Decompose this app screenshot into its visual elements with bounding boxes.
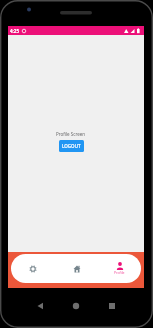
staticText: Profile Screen — [56, 131, 86, 137]
staticText: 4:25 — [10, 28, 19, 34]
staticText: Profile — [114, 270, 125, 275]
button[interactable]: LOGOUT — [59, 140, 84, 152]
button[interactable] — [11, 254, 55, 283]
button[interactable]: Profile — [98, 254, 141, 283]
staticText: LOGOUT — [62, 143, 81, 149]
button[interactable] — [55, 254, 98, 283]
